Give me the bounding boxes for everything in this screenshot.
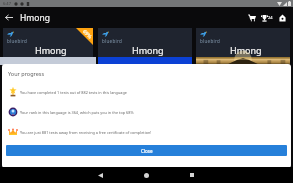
button[interactable]: Home [134,167,158,183]
staticText: Close [141,148,153,154]
staticText: Your progress [8,70,45,77]
staticText: You are just 881 tests away from receivi… [20,130,152,135]
staticText: 24 [268,15,273,20]
button[interactable]: Home [276,7,289,28]
staticText: bluebird [102,38,123,44]
button[interactable]: Close [6,145,287,156]
button[interactable]: Back [88,167,112,183]
staticText: Hmong [132,44,164,56]
button[interactable]: Navigate back [0,7,17,28]
staticText: Your rank in this language is 364, which… [20,110,134,115]
staticText: You have completed 1 tests out of 882 te… [20,90,127,95]
staticText: Hmong [35,44,67,56]
staticText: bluebird [7,38,28,44]
staticText: Hmong [230,44,262,56]
button[interactable]: bluebird [196,28,290,57]
staticText: 6:47 [3,1,11,6]
button[interactable]: Achievements, 24 [258,7,276,28]
button[interactable]: Recent apps [180,167,204,183]
staticText: 69% [81,28,94,41]
button[interactable]: Shopping cart [245,7,258,28]
button[interactable]: bluebird [3,28,93,57]
staticText: Hmong [20,12,50,24]
staticText: bluebird [200,38,221,44]
button[interactable]: bluebird [98,28,192,57]
